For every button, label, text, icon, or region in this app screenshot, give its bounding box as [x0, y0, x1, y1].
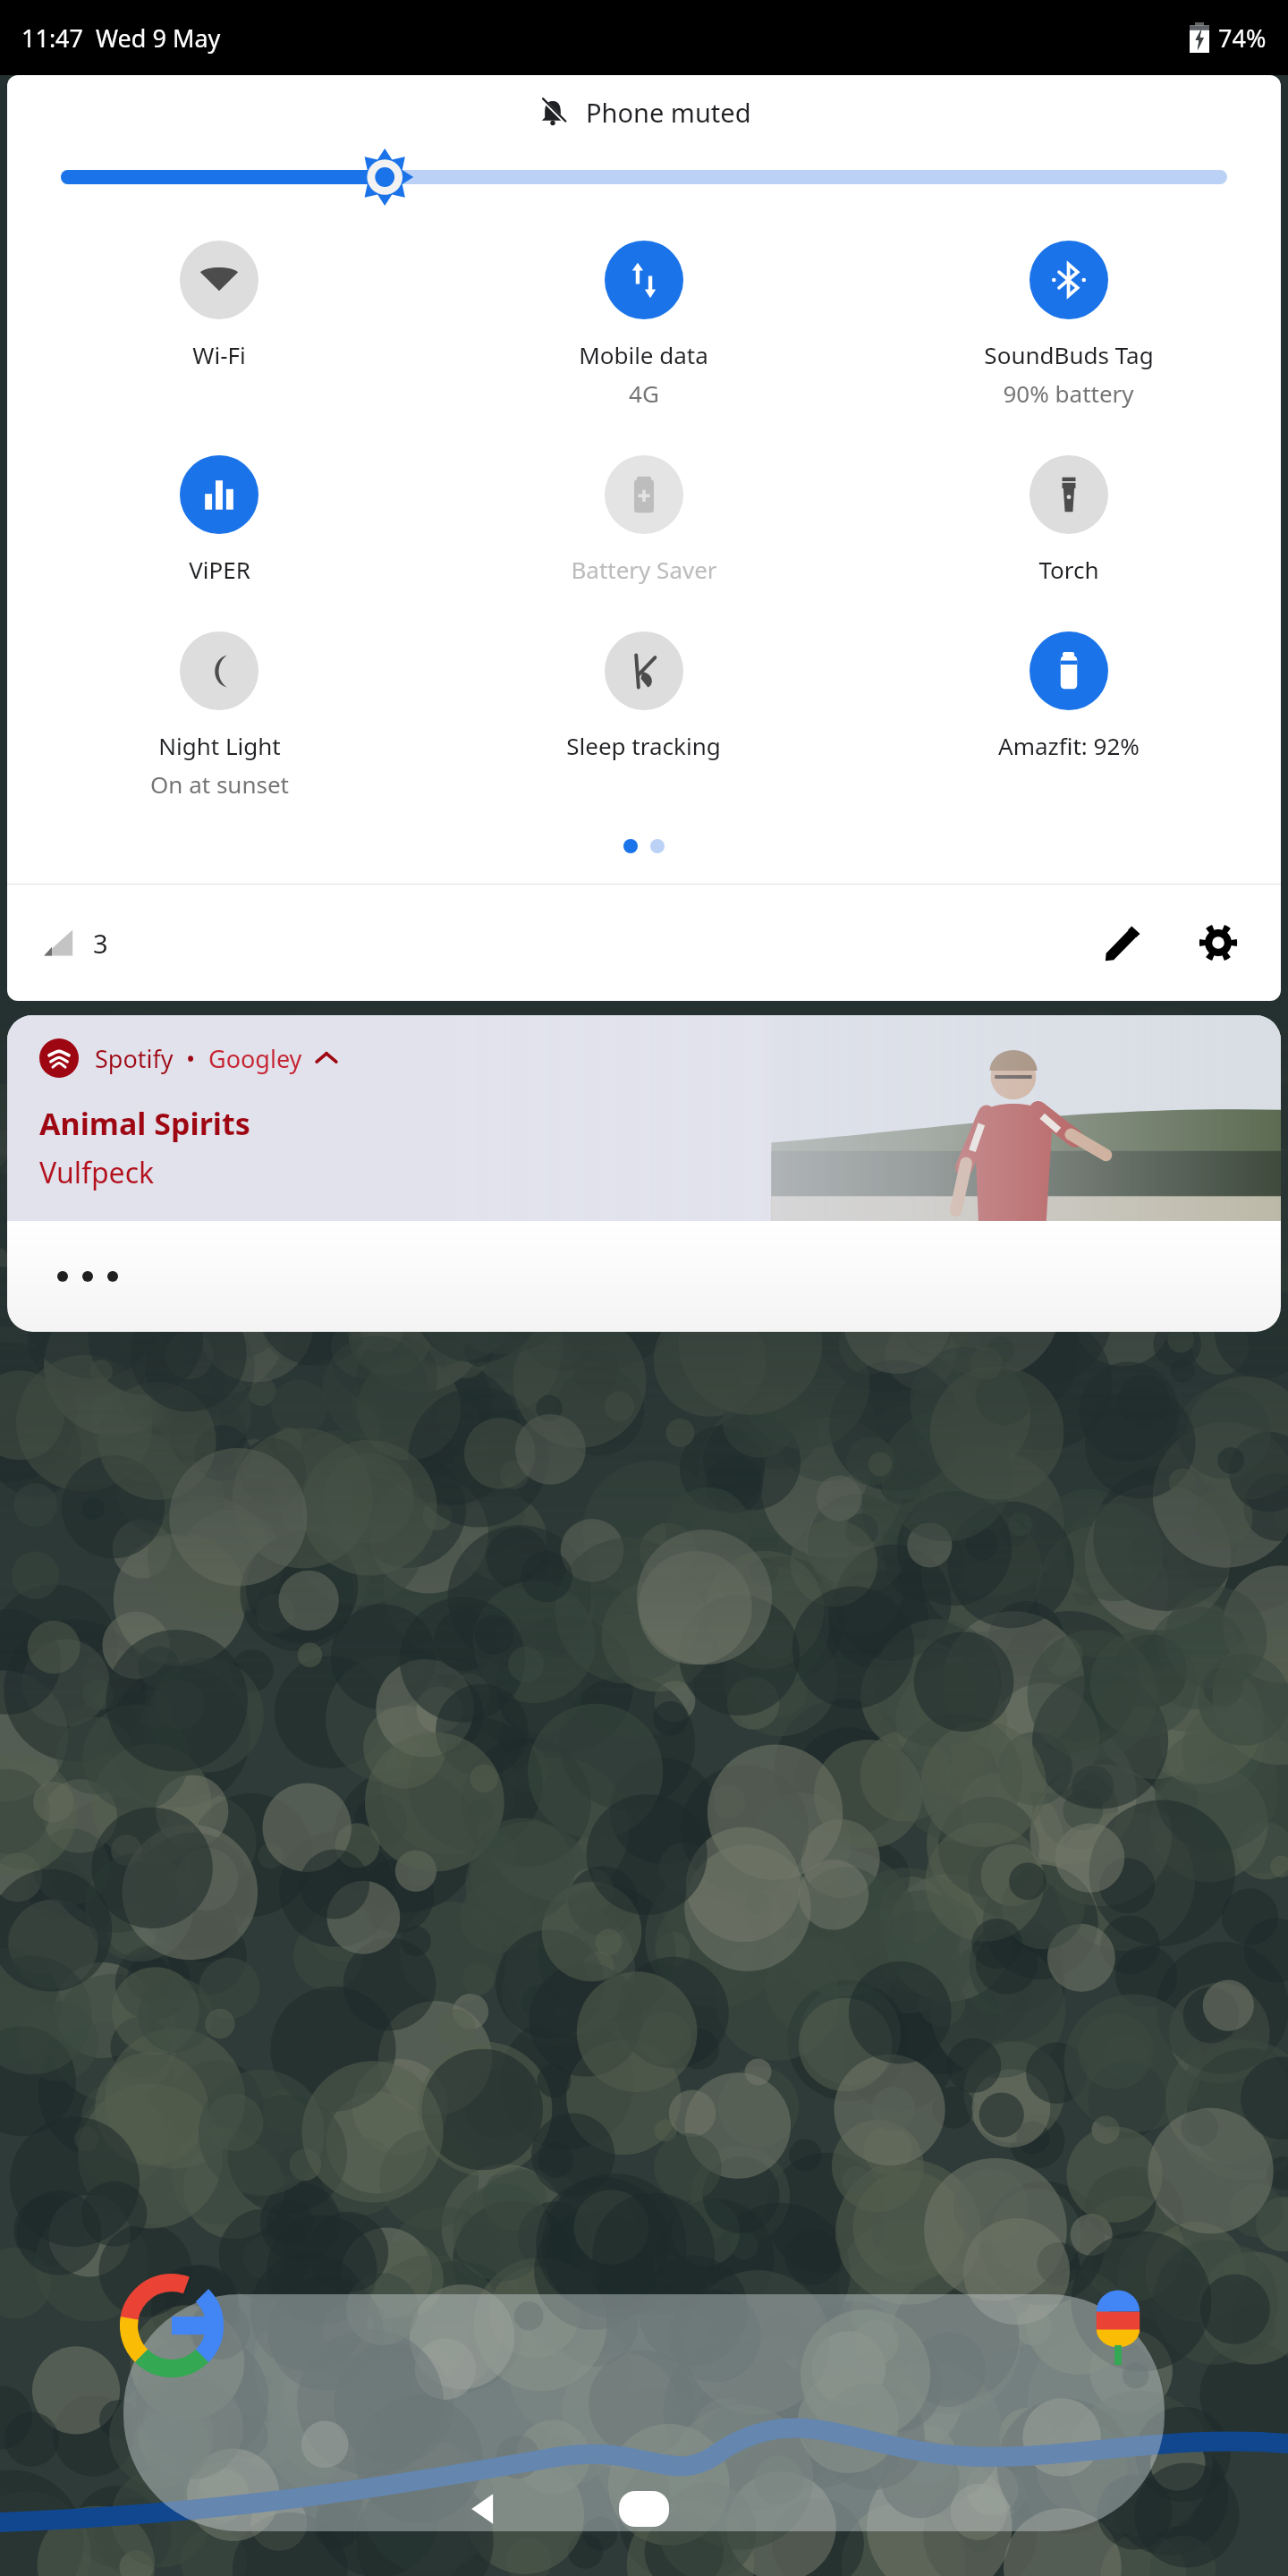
- button[interactable]: Sleep tracking: [431, 631, 856, 761]
- button[interactable]: Wi-Fi: [7, 241, 431, 370]
- staticText: •: [174, 1042, 208, 1075]
- button[interactable]: Edit: [1088, 907, 1159, 979]
- staticText: 3: [93, 926, 108, 961]
- button[interactable]: SoundBuds Tag: [856, 241, 1281, 409]
- staticText: Sleep tracking: [566, 730, 721, 761]
- button[interactable]: Mobile data: [431, 241, 856, 409]
- button[interactable]: Spotify: [7, 1015, 1281, 1221]
- staticText: Vulfpeck: [39, 1153, 155, 1192]
- button[interactable]: Back: [443, 2469, 523, 2549]
- staticText: Torch: [1038, 554, 1099, 585]
- staticText: SoundBuds Tag: [984, 339, 1154, 370]
- staticText: ViPER: [189, 554, 250, 585]
- staticText: Mobile data: [579, 339, 708, 370]
- staticText: 74%: [1218, 21, 1267, 55]
- button[interactable]: Settings: [1182, 907, 1254, 979]
- staticText: Spotify: [95, 1042, 174, 1075]
- staticText: 4G: [629, 377, 659, 409]
- button[interactable]: ViPER: [7, 455, 431, 585]
- staticText: Amazfit: 92%: [998, 730, 1140, 761]
- staticText: Googley: [208, 1042, 302, 1075]
- button[interactable]: [7, 1221, 1281, 1332]
- button[interactable]: 3: [34, 918, 115, 968]
- staticText: Animal Spirits: [39, 1103, 250, 1144]
- staticText: 11:47 Wed 9 May: [21, 21, 221, 55]
- staticText: On at sunset: [150, 768, 289, 800]
- button[interactable]: Amazfit: 92%: [856, 631, 1281, 761]
- button[interactable]: Battery Saver: [431, 455, 856, 585]
- button[interactable]: Home: [595, 2473, 693, 2545]
- staticText: 90% battery: [1003, 377, 1134, 409]
- staticText: Phone muted: [586, 95, 751, 130]
- button[interactable]: Torch: [856, 455, 1281, 585]
- staticText: Battery Saver: [571, 554, 717, 585]
- staticText: Night Light: [158, 730, 281, 761]
- staticText: Wi-Fi: [192, 339, 246, 370]
- button[interactable]: Night Light: [7, 631, 431, 800]
